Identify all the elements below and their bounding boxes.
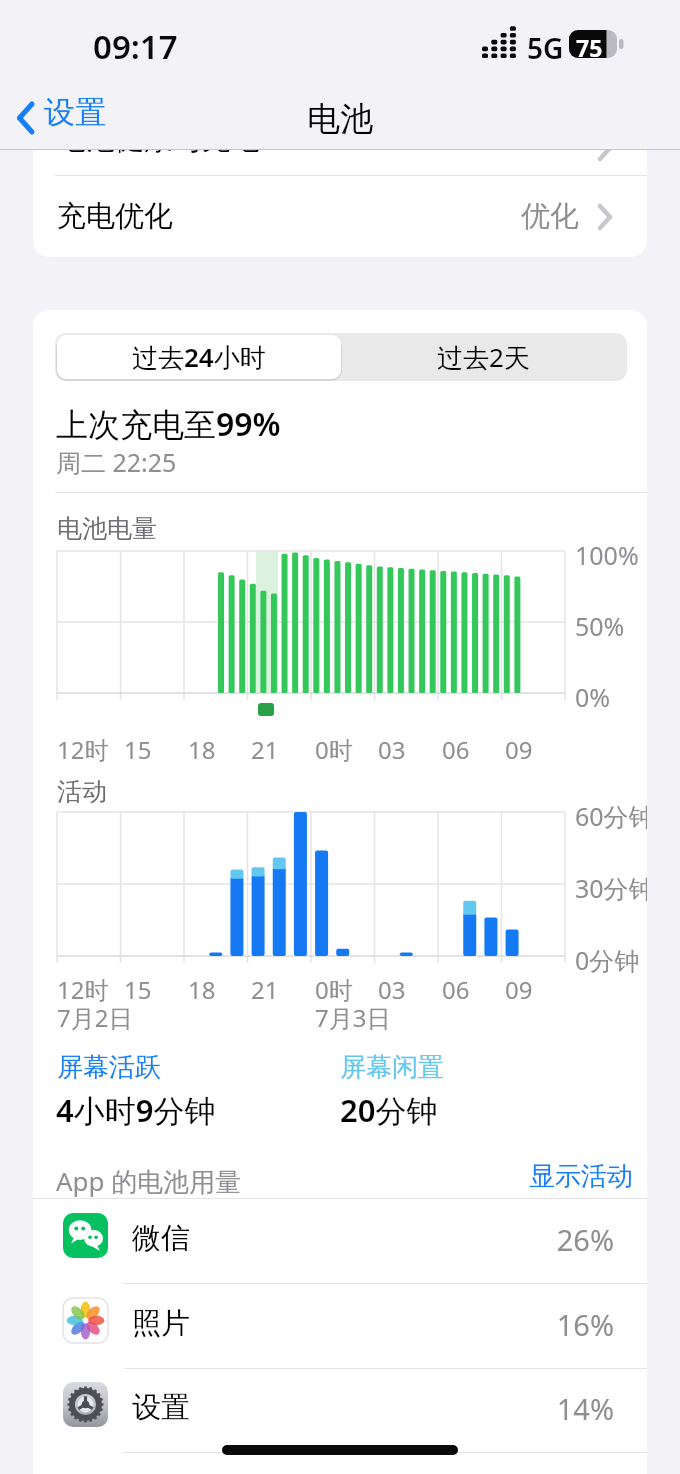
staticText: 09 bbox=[505, 733, 533, 766]
staticText: 照片 bbox=[132, 1305, 190, 1342]
staticText: 电池 bbox=[307, 98, 373, 140]
staticText: 50% bbox=[575, 609, 625, 643]
staticText: 06 bbox=[442, 973, 470, 1006]
button[interactable]: 过去2天 bbox=[341, 335, 625, 379]
button[interactable]: 设置 bbox=[33, 1368, 647, 1453]
staticText: 21 bbox=[251, 733, 279, 766]
staticText: 活动 bbox=[57, 776, 107, 807]
staticText: 过去2天 bbox=[437, 339, 530, 375]
button[interactable]: 过去24小时 bbox=[57, 335, 341, 379]
staticText: 20分钟 bbox=[340, 1089, 438, 1131]
staticText: 4小时9分钟 bbox=[56, 1089, 216, 1131]
staticText: 微信 bbox=[132, 1220, 190, 1257]
staticText: 12时 bbox=[57, 973, 109, 1006]
staticText: 18 bbox=[188, 733, 216, 766]
staticText: 0时 bbox=[315, 973, 353, 1006]
staticText: 06 bbox=[442, 733, 470, 766]
staticText: 电池电量 bbox=[57, 513, 157, 544]
staticText: 15 bbox=[124, 973, 152, 1006]
staticText: 09:17 bbox=[93, 24, 178, 69]
staticText: 03 bbox=[378, 733, 406, 766]
staticText: 0分钟 bbox=[575, 943, 640, 977]
staticText: 周二 22:25 bbox=[56, 445, 177, 479]
staticText: 7月2日 bbox=[57, 1001, 133, 1034]
staticText: 75 bbox=[576, 32, 603, 63]
staticText: 60分钟 bbox=[575, 799, 647, 833]
staticText: 0% bbox=[575, 680, 611, 714]
staticText: 30分钟 bbox=[575, 871, 647, 905]
staticText: 过去24小时 bbox=[132, 339, 266, 375]
staticText: 上次充电至99% bbox=[56, 402, 281, 446]
staticText: 设置 bbox=[132, 1389, 190, 1426]
button[interactable]: 照片 bbox=[33, 1284, 647, 1369]
staticText: 0时 bbox=[315, 733, 353, 766]
staticText: 18 bbox=[188, 973, 216, 1006]
staticText: 15 bbox=[124, 733, 152, 766]
staticText: 03 bbox=[378, 973, 406, 1006]
staticText: 优化 bbox=[521, 198, 579, 235]
staticText: 屏幕闲置 bbox=[340, 1051, 444, 1084]
staticText: 5G bbox=[527, 29, 564, 67]
staticText: 12时 bbox=[57, 733, 109, 766]
staticText: 100% bbox=[575, 538, 639, 572]
staticText: 屏幕活跃 bbox=[57, 1051, 161, 1084]
staticText: 09 bbox=[505, 973, 533, 1006]
staticText: 14% bbox=[463, 1389, 614, 1428]
button[interactable]: 显示活动 bbox=[493, 1155, 633, 1195]
staticText: 电池健康与充电 bbox=[57, 150, 260, 158]
staticText: 充电优化 bbox=[57, 198, 173, 235]
staticText: 26% bbox=[463, 1220, 614, 1259]
staticText: 21 bbox=[251, 973, 279, 1006]
staticText: 7月3日 bbox=[315, 1001, 391, 1034]
button[interactable]: 充电优化 bbox=[33, 176, 647, 257]
button[interactable]: 设置 bbox=[0, 88, 680, 150]
button[interactable]: 微信 bbox=[33, 1199, 647, 1284]
staticText: 16% bbox=[463, 1305, 614, 1344]
staticText: 显示活动 bbox=[493, 1160, 633, 1193]
staticText: App 的电池用量 bbox=[56, 1163, 242, 1199]
staticText: 设置 bbox=[44, 93, 106, 132]
